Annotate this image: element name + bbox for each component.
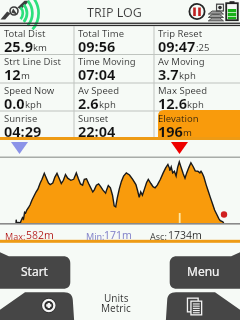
staticText: Total Dist <box>4 27 46 40</box>
button[interactable]: Logs <box>158 286 240 320</box>
staticText: m <box>183 126 192 139</box>
staticText: m <box>21 69 30 82</box>
staticText: 12 <box>4 64 21 84</box>
staticText: kph <box>99 98 116 111</box>
staticText: 04:29 <box>4 121 42 141</box>
staticText: 171m <box>104 228 132 242</box>
staticText: Asc: <box>150 230 167 242</box>
button[interactable] <box>170 250 240 284</box>
staticText: Menu <box>187 263 220 279</box>
staticText: Max: <box>5 230 26 242</box>
staticText: Start <box>21 263 48 279</box>
staticText: Strt Line Dist <box>4 55 61 68</box>
staticText: 22:04 <box>78 121 116 141</box>
staticText: Metric <box>101 301 131 315</box>
staticText: Total Time <box>78 27 125 40</box>
staticText: 2.6 <box>78 93 99 113</box>
staticText: kph <box>179 69 196 82</box>
staticText: Time Moving <box>78 55 136 68</box>
button[interactable] <box>0 250 70 284</box>
staticText: 0.0 <box>4 93 25 113</box>
staticText: Sunset <box>78 112 109 125</box>
staticText: Units <box>104 291 129 305</box>
staticText: Av Moving <box>158 55 205 68</box>
staticText: 582m <box>26 228 54 242</box>
staticText: 09:47 <box>158 36 196 56</box>
staticText: Elevation <box>158 112 199 125</box>
staticText: kph <box>25 98 42 111</box>
staticText: 09:56 <box>78 36 116 56</box>
staticText: km <box>33 41 47 54</box>
staticText: 07:04 <box>78 64 116 84</box>
staticText: 12.6 <box>158 93 187 113</box>
button[interactable]: Record <box>0 286 82 320</box>
staticText: Max Speed <box>158 84 208 97</box>
staticText: :25 <box>196 41 210 54</box>
staticText: 3.7 <box>158 64 179 84</box>
staticText: TRIP LOG <box>87 4 142 21</box>
staticText: Speed Now <box>4 84 55 97</box>
staticText: Sunrise <box>4 112 38 125</box>
staticText: 25.9 <box>4 36 33 56</box>
staticText: 196 <box>158 121 183 141</box>
staticText: Av Speed <box>78 84 119 97</box>
staticText: Min: <box>86 230 105 242</box>
staticText: Trip Reset <box>158 27 203 40</box>
staticText: kph <box>187 98 204 111</box>
staticText: 1734m <box>168 228 202 242</box>
